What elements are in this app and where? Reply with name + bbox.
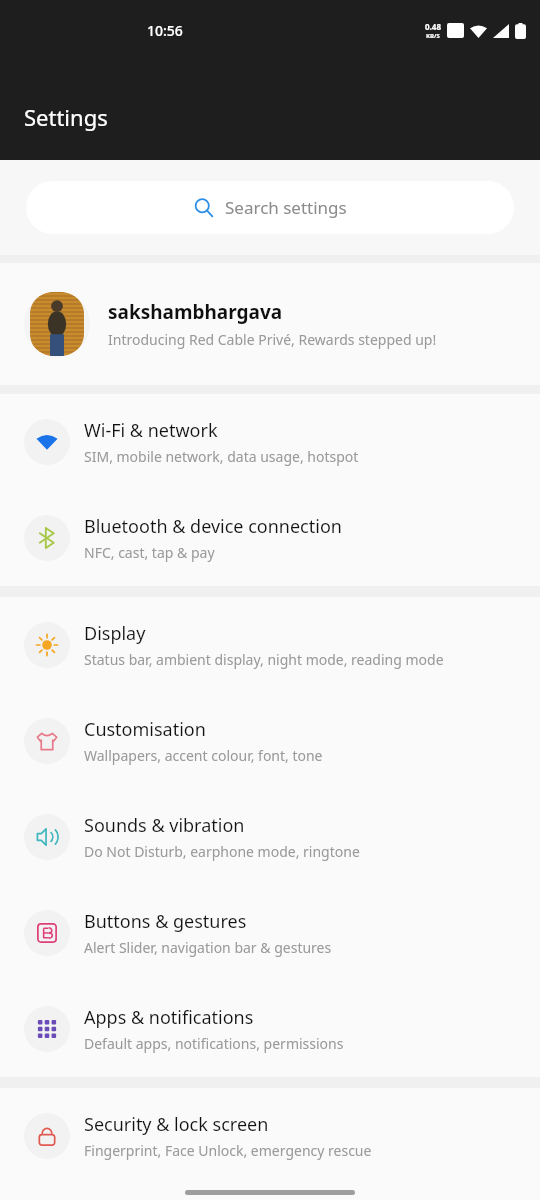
staticText: Fingerprint, Face Unlock, emergency resc… (84, 1141, 372, 1160)
button[interactable]: Buttons & gestures (0, 885, 540, 981)
staticText: Settings (24, 102, 108, 132)
button[interactable]: Security & lock screen (0, 1088, 540, 1184)
staticText: Apps & notifications (84, 1005, 254, 1030)
staticText: sakshambhargava (108, 299, 283, 325)
staticText: 10:56 (147, 21, 183, 40)
staticText: 0.48 (425, 21, 441, 32)
staticText: Wi-Fi & network (84, 418, 218, 443)
button[interactable]: Apps & notifications (0, 981, 540, 1077)
staticText: Bluetooth & device connection (84, 514, 342, 539)
staticText: Buttons & gestures (84, 909, 247, 934)
staticText: Alert Slider, navigation bar & gestures (84, 938, 332, 957)
button[interactable]: Sounds & vibration (0, 789, 540, 885)
button[interactable]: Customisation (0, 693, 540, 789)
staticText: SIM, mobile network, data usage, hotspot (84, 447, 359, 466)
staticText: Customisation (84, 717, 206, 742)
staticText: KB/S (426, 32, 440, 40)
staticText: Wallpapers, accent colour, font, tone (84, 746, 323, 765)
staticText: Display (84, 621, 146, 646)
button[interactable]: Wi-Fi & network (0, 394, 540, 490)
staticText: Do Not Disturb, earphone mode, ringtone (84, 842, 360, 861)
staticText: Search settings (225, 196, 347, 219)
staticText: Status bar, ambient display, night mode,… (84, 650, 444, 669)
staticText: Security & lock screen (84, 1112, 269, 1137)
button[interactable]: Display (0, 597, 540, 693)
button[interactable]: sakshambhargava (0, 263, 540, 385)
staticText: Default apps, notifications, permissions (84, 1034, 344, 1053)
staticText: NFC, cast, tap & pay (84, 543, 215, 562)
other: Search (193, 197, 215, 219)
button[interactable]: Bluetooth & device connection (0, 490, 540, 586)
staticText: Sounds & vibration (84, 813, 245, 838)
staticText: Introducing Red Cable Privé, Rewards ste… (108, 330, 437, 349)
button[interactable]: Search (26, 181, 514, 234)
